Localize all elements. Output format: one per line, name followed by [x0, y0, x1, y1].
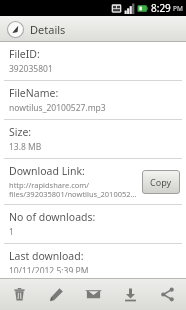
staticText: Copy — [150, 176, 172, 188]
button[interactable]: Copy — [142, 170, 180, 194]
button[interactable]: Email — [75, 279, 112, 310]
staticText: 1 — [9, 226, 14, 238]
button[interactable]: Last download: — [0, 244, 186, 278]
button[interactable]: FileName: — [0, 81, 186, 119]
staticText: Last download: — [9, 249, 84, 263]
staticText: 392035801 — [9, 63, 53, 75]
staticText: Details — [30, 22, 66, 37]
button[interactable]: Delete — [0, 279, 38, 310]
staticText: Download Link: — [9, 164, 85, 178]
button[interactable]: Download Link: — [0, 159, 186, 204]
button[interactable]: Up — [7, 21, 66, 38]
button[interactable]: Size: — [0, 120, 186, 158]
button[interactable]: Edit — [38, 279, 75, 310]
button[interactable]: Share — [149, 279, 186, 310]
staticText: nowtilus_20100527.mp3 — [9, 102, 106, 114]
button[interactable]: Download — [112, 279, 149, 310]
staticText: No of downloads: — [9, 210, 96, 224]
staticText: 10/11/2012 5:39 PM — [9, 265, 89, 273]
button[interactable]: FileID: — [0, 42, 186, 80]
staticText: PM — [173, 4, 183, 13]
staticText: FileName: — [9, 86, 59, 100]
staticText: Size: — [9, 125, 32, 139]
staticText: 8:29 — [151, 1, 171, 15]
staticText: http://rapidshare.com/ files/392035801/n… — [9, 180, 137, 199]
staticText: FileID: — [9, 47, 40, 61]
button[interactable]: No of downloads: — [0, 205, 186, 243]
staticText: 13.8 MB — [9, 141, 42, 153]
